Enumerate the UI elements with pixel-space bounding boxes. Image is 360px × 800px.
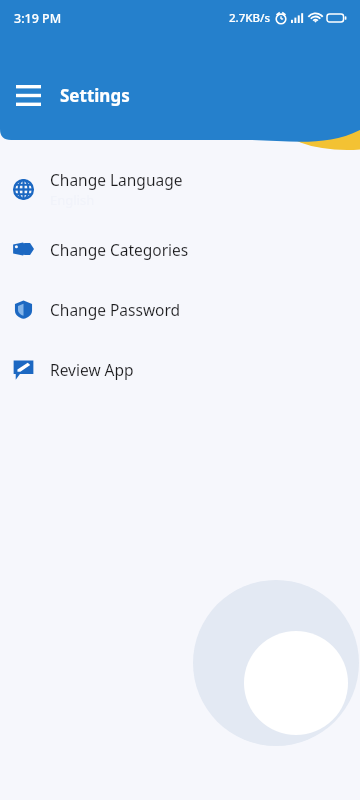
staticText: 3:19 PM — [14, 10, 62, 27]
staticText: Settings — [60, 84, 130, 107]
staticText: 2.7KB/s — [229, 10, 271, 26]
button[interactable]: Change Password — [0, 279, 360, 339]
staticText: Review App — [50, 359, 134, 380]
button[interactable]: Review App — [0, 339, 360, 399]
staticText: Change Categories — [50, 239, 189, 260]
button[interactable]: Change Language — [0, 159, 360, 219]
staticText: Change Language — [50, 169, 183, 190]
button[interactable]: Open navigation menu — [5, 72, 51, 118]
staticText: Change Password — [50, 299, 181, 320]
button[interactable]: Change Categories — [0, 219, 360, 279]
